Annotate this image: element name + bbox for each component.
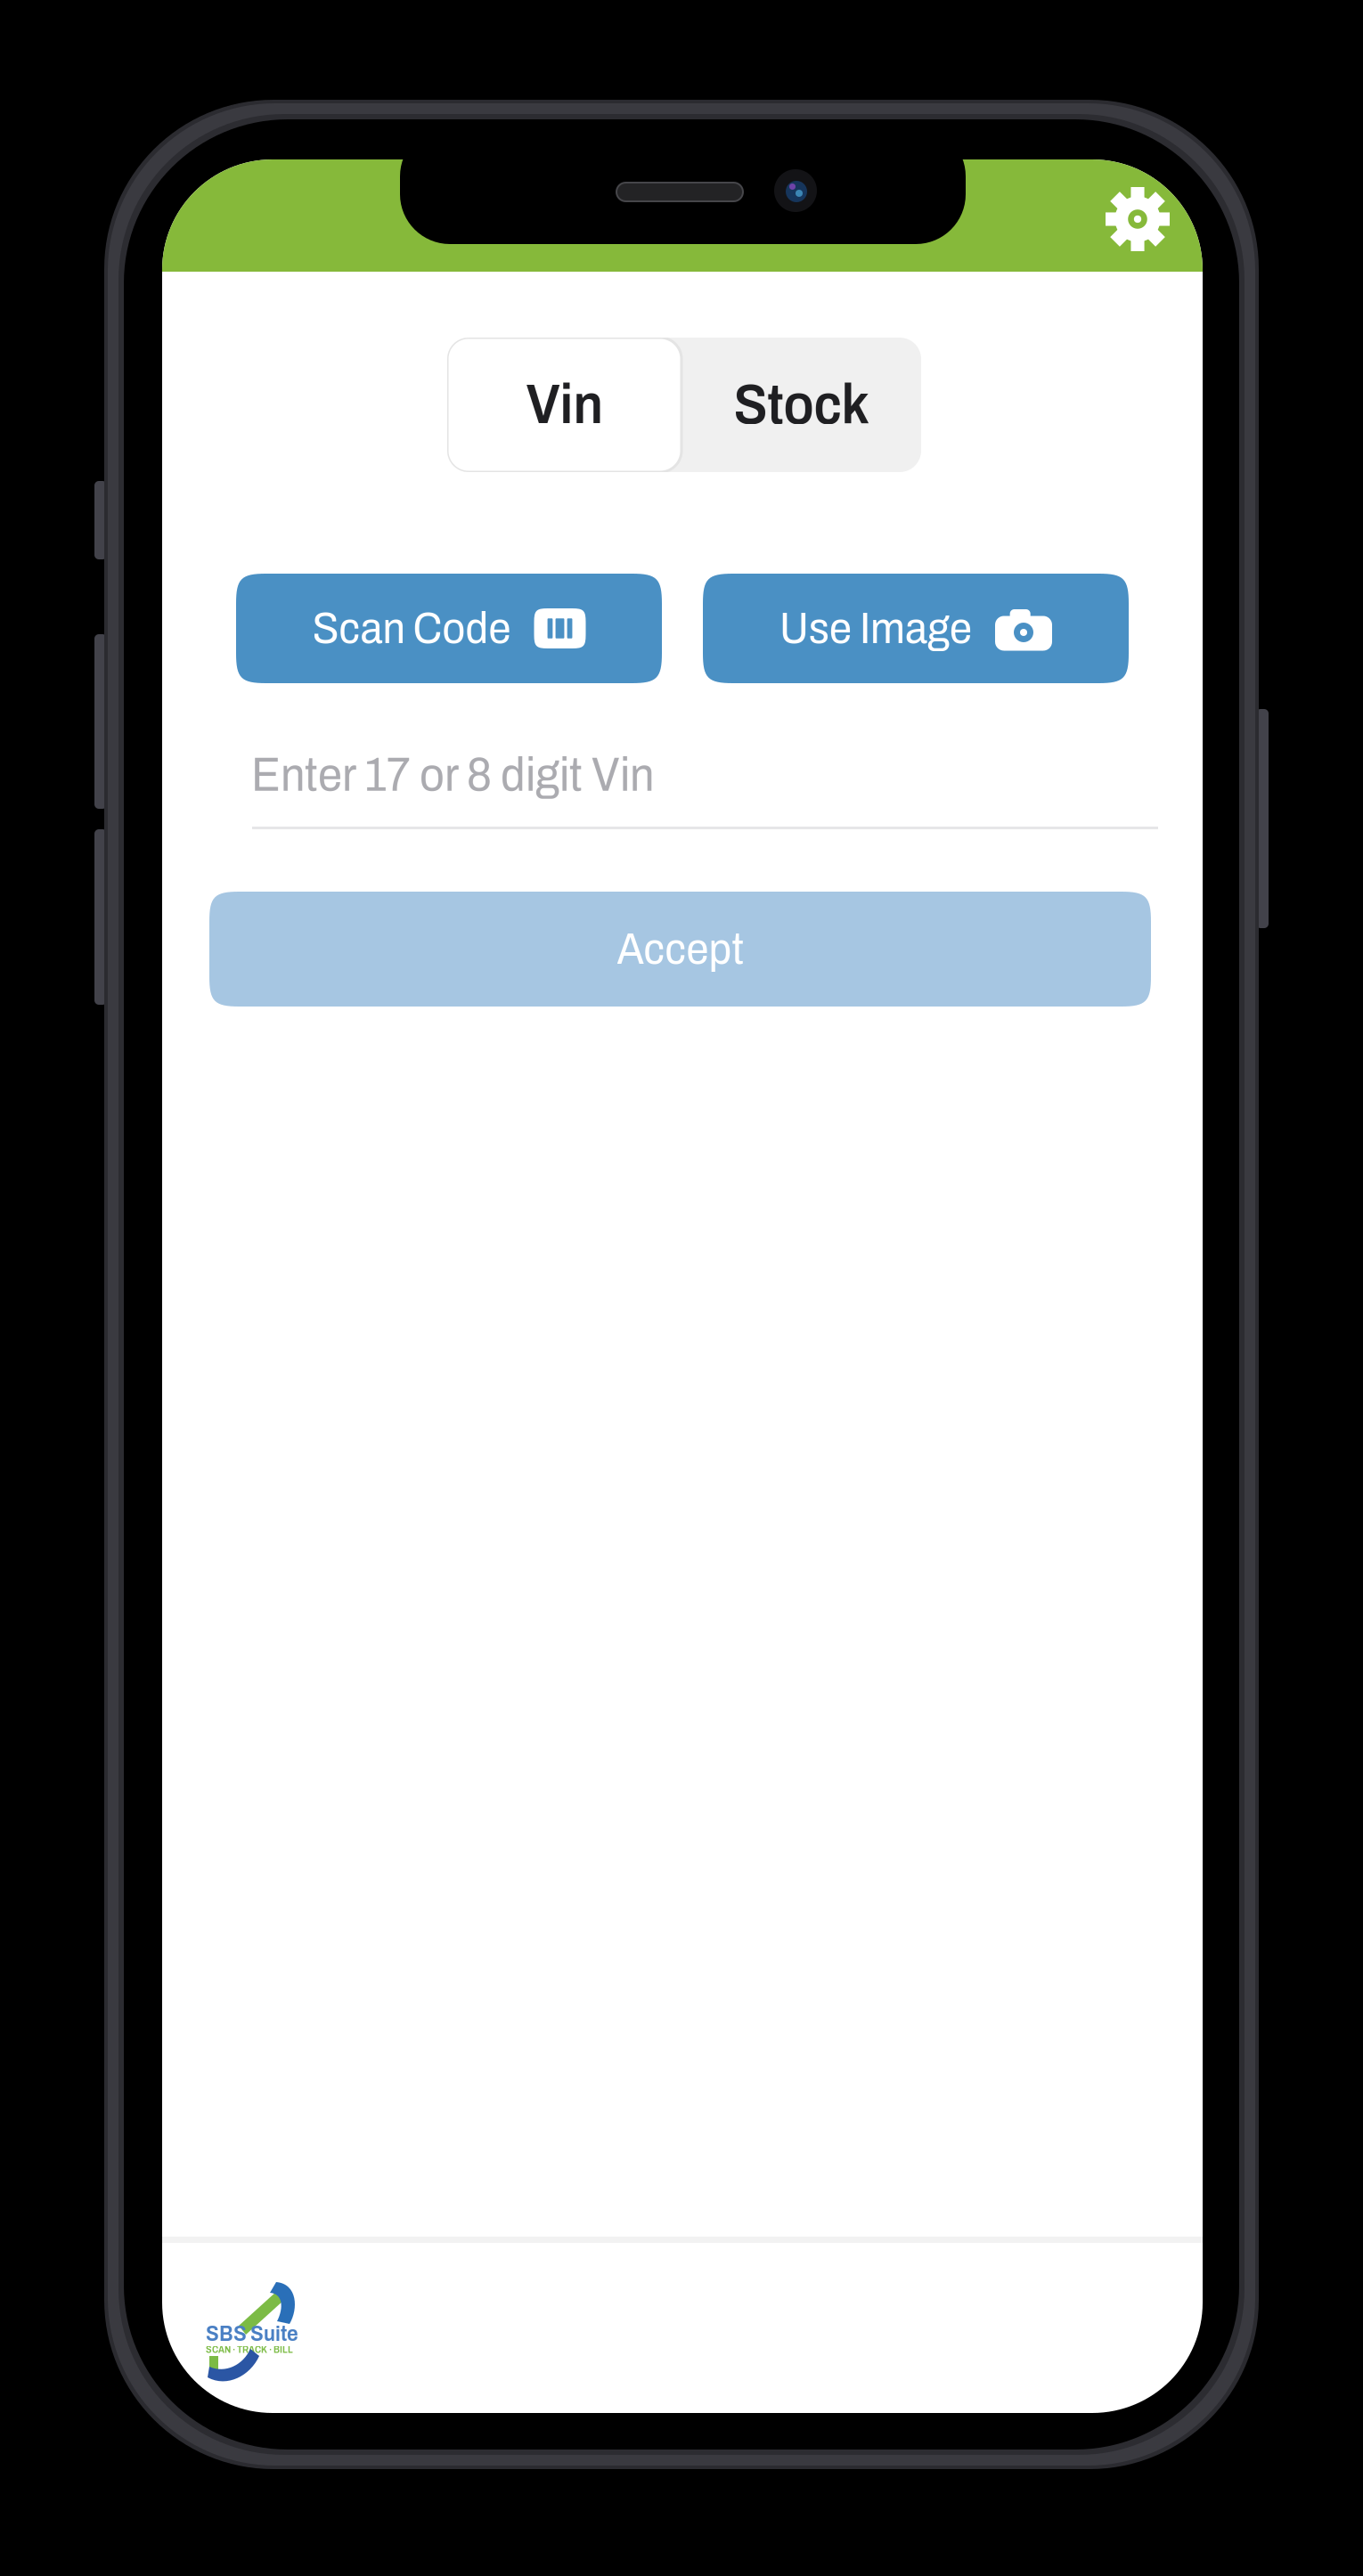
button[interactable]: Stock <box>681 338 921 472</box>
staticText: Use Image <box>779 605 972 652</box>
button[interactable]: Settings <box>1085 167 1190 272</box>
button[interactable]: Vin <box>447 338 681 472</box>
staticText: Stock <box>734 374 869 435</box>
staticText: SBS Suite <box>206 2322 298 2345</box>
button[interactable]: Scan Code <box>236 574 662 683</box>
staticText: Scan Code <box>312 605 511 652</box>
button[interactable]: Use Image <box>703 574 1129 683</box>
staticText: Vin <box>526 374 603 435</box>
staticText: Accept <box>617 925 743 973</box>
button[interactable]: Accept <box>209 892 1151 1007</box>
staticText: SCAN · TRACK · BILL <box>206 2345 293 2355</box>
staticText: Enter 17 or 8 digit Vin <box>251 749 654 801</box>
